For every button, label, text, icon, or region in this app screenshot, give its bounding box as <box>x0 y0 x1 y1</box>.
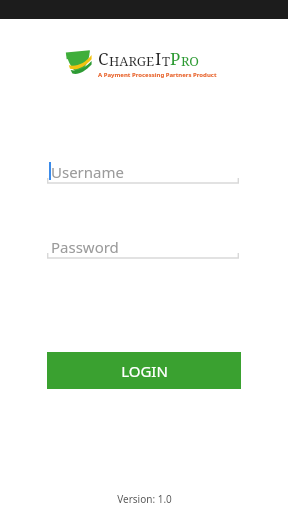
staticText: I <box>155 47 162 70</box>
button[interactable]: LOGIN <box>47 352 241 389</box>
staticText: C <box>98 47 109 70</box>
staticText: Version: 1.0 <box>117 492 172 506</box>
staticText: Username <box>51 162 124 182</box>
staticText: T <box>162 52 170 70</box>
staticText: RO <box>181 52 199 70</box>
button[interactable]: Username <box>47 160 239 186</box>
staticText: LOGIN <box>121 361 168 381</box>
staticText: Password <box>51 237 119 257</box>
staticText: HARGE <box>109 52 155 70</box>
staticText: P <box>170 47 181 70</box>
staticText: A Payment Processing Partners Product <box>98 71 217 78</box>
button[interactable]: Password <box>47 235 239 261</box>
